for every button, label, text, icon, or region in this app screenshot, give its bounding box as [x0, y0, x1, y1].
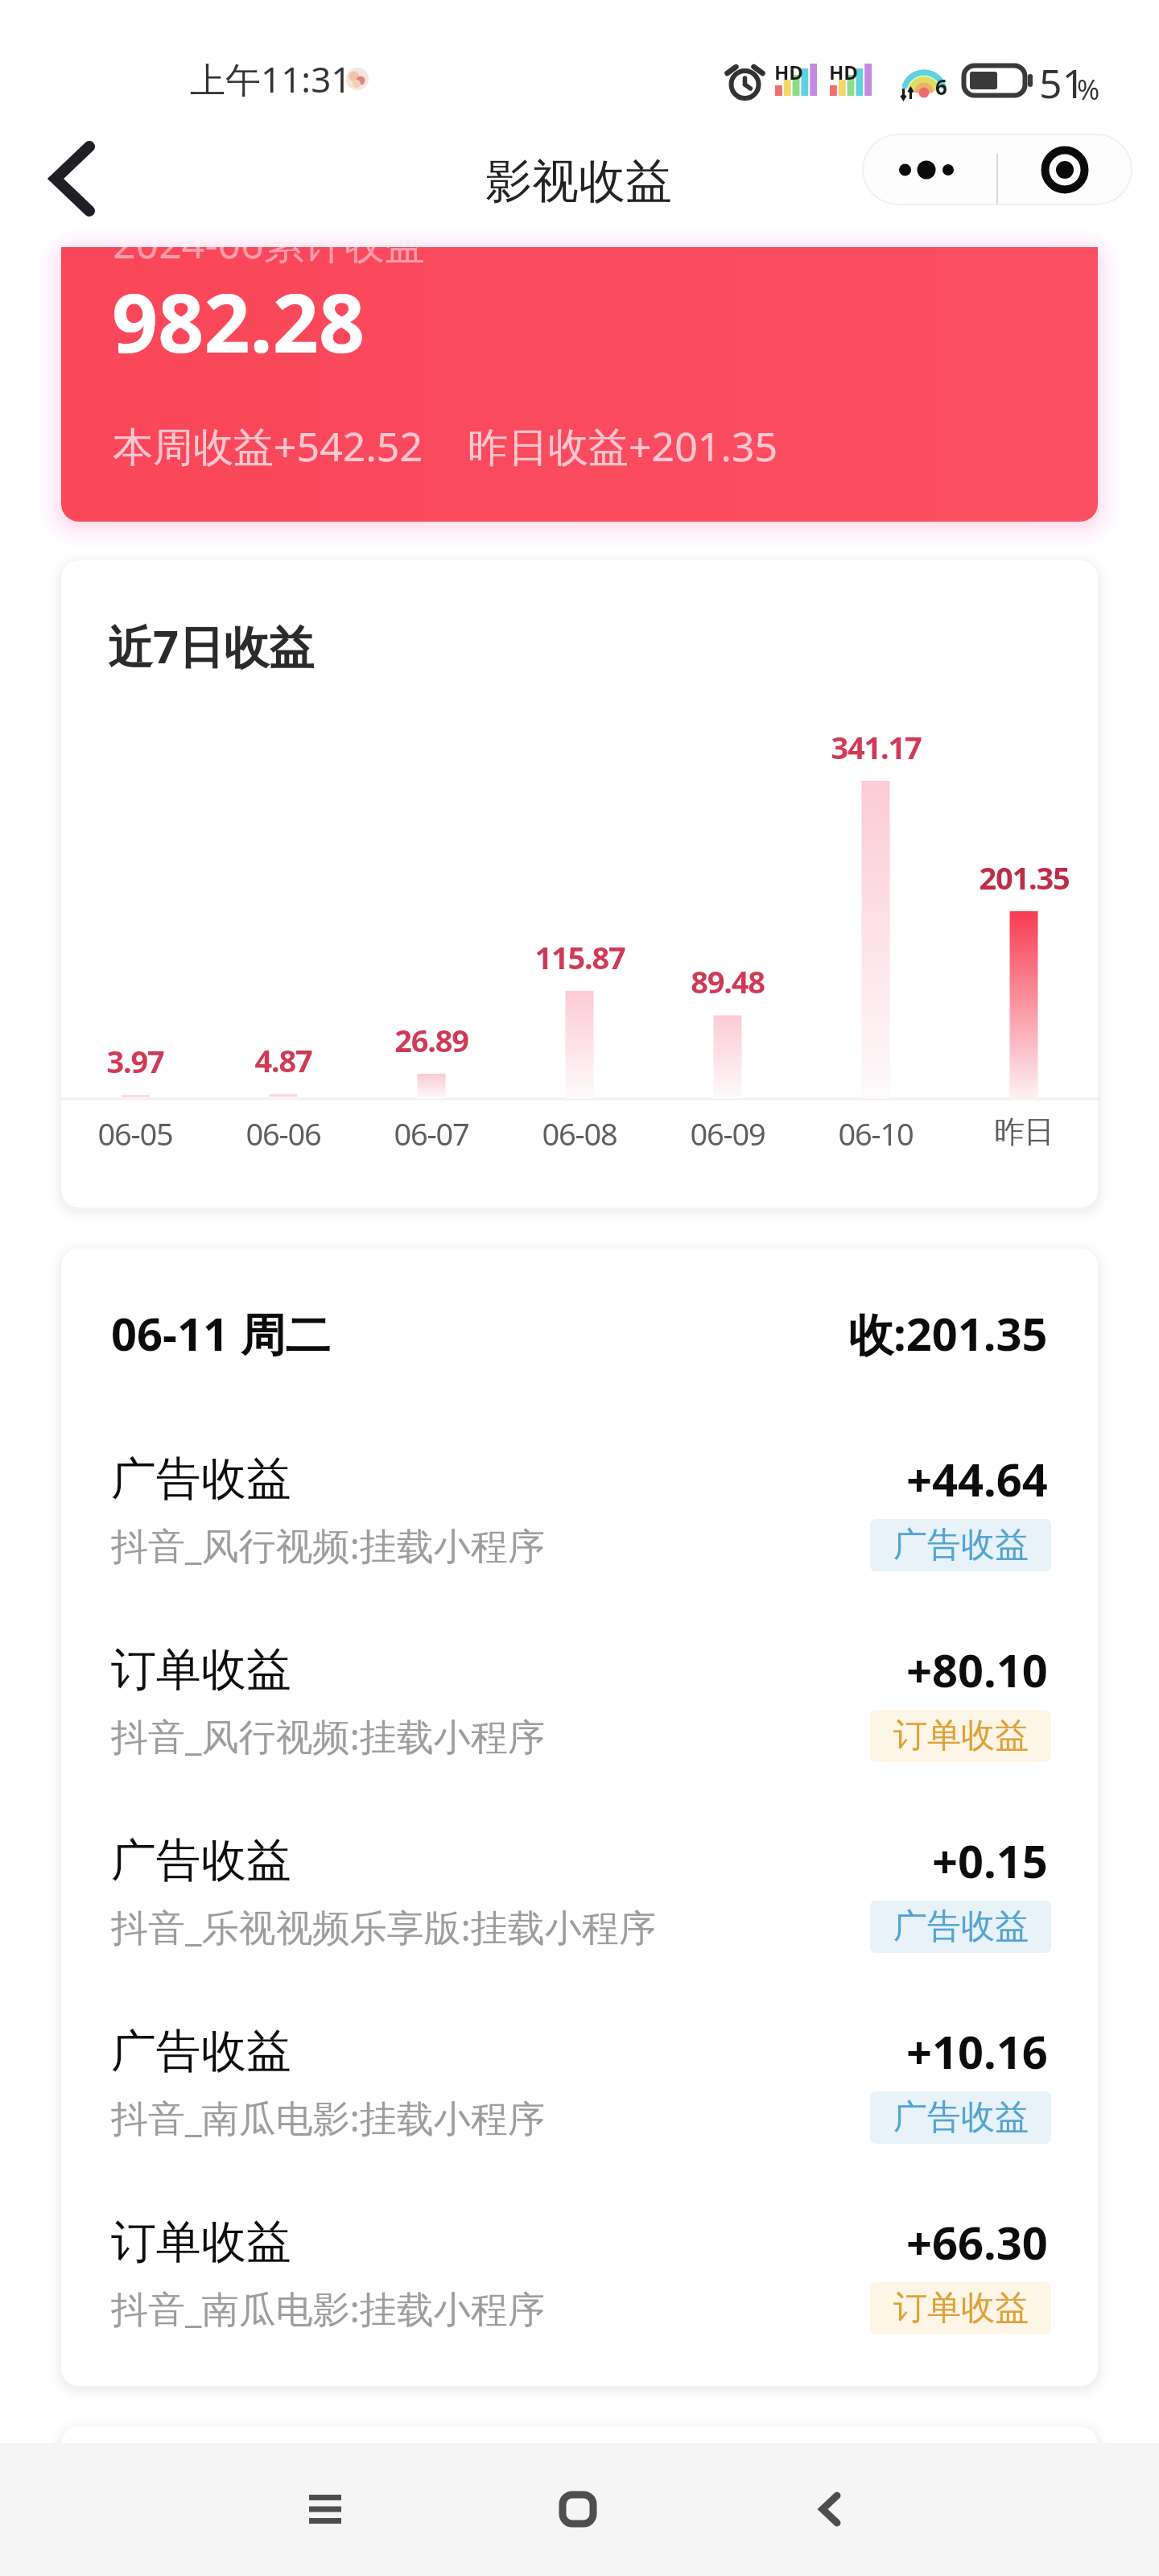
staticText: +80.10	[906, 1639, 1048, 1700]
staticText: 06-09	[690, 1113, 765, 1154]
button[interactable]: 近7日收益	[61, 560, 1098, 1207]
staticText: 影视收益	[485, 152, 672, 211]
button[interactable]: 广告收益	[61, 2021, 1098, 2193]
staticText: 抖音_乐视视频乐享版:挂载小程序	[111, 1901, 656, 1952]
staticText: 2024-06累计收益	[113, 247, 425, 270]
staticText: HD	[774, 59, 803, 85]
staticText: 广告收益	[893, 2096, 1029, 2139]
button[interactable]: 订单收益	[61, 2211, 1098, 2384]
staticText: 982.28	[112, 266, 365, 376]
staticText: 上午11:31	[190, 55, 352, 103]
staticText: 06-08	[542, 1113, 617, 1154]
staticText: 收:201.35	[848, 1302, 1048, 1364]
staticText: 近7日收益	[108, 615, 315, 676]
button[interactable]: 广告收益	[61, 1448, 1098, 1620]
staticText: 4.87	[254, 1039, 312, 1081]
staticText: 201.35	[979, 857, 1070, 898]
staticText: 06-10	[838, 1113, 914, 1154]
staticText: 抖音_风行视频:挂载小程序	[111, 1711, 545, 1761]
button[interactable]: Back	[21, 127, 124, 230]
button[interactable]: More options	[862, 134, 997, 205]
staticText: +0.15	[932, 1830, 1048, 1891]
staticText: 抖音_南瓜电影:挂载小程序	[111, 2092, 545, 2143]
staticText: +66.30	[906, 2211, 1048, 2273]
staticText: 341.17	[831, 726, 922, 768]
staticText: 06-07	[394, 1113, 469, 1154]
staticText: 订单收益	[111, 1641, 291, 1699]
staticText: 广告收益	[111, 2023, 291, 2080]
button[interactable]: Home	[542, 2474, 613, 2545]
staticText: 广告收益	[893, 1905, 1029, 1948]
staticText: 订单收益	[893, 2287, 1029, 2330]
staticText: 广告收益	[111, 1832, 291, 1889]
staticText: 06-05	[97, 1113, 173, 1154]
button[interactable]: 广告收益	[61, 1830, 1098, 2002]
staticText: 本周收益+542.52	[113, 419, 423, 473]
staticText: 06-06	[245, 1113, 321, 1154]
staticText: 广告收益	[111, 1451, 291, 1508]
button[interactable]: Close mini program	[997, 134, 1132, 205]
staticText: 115.87	[534, 936, 625, 978]
staticText: +10.16	[906, 2021, 1048, 2082]
button[interactable]: 订单收益	[61, 1639, 1098, 1811]
staticText: 广告收益	[893, 1524, 1029, 1567]
staticText: 6	[935, 72, 947, 101]
staticText: 89.48	[691, 960, 765, 1002]
button[interactable]: 2024-06累计收益	[61, 247, 1098, 522]
button[interactable]: Back	[794, 2474, 865, 2545]
staticText: %	[1077, 71, 1100, 108]
staticText: 订单收益	[893, 1715, 1029, 1757]
staticText: HD	[829, 59, 858, 85]
staticText: 昨日	[994, 1113, 1054, 1151]
staticText: 3.97	[106, 1040, 164, 1082]
staticText: 抖音_南瓜电影:挂载小程序	[111, 2283, 545, 2334]
staticText: 昨日收益+201.35	[468, 419, 777, 473]
staticText: 抖音_风行视频:挂载小程序	[111, 1520, 545, 1571]
staticText: +44.64	[906, 1448, 1048, 1509]
staticText: 06-11 周二	[111, 1302, 331, 1364]
staticText: 51	[1039, 56, 1086, 110]
other: Alarm set	[725, 61, 765, 100]
staticText: 订单收益	[111, 2214, 291, 2271]
staticText: 26.89	[394, 1019, 468, 1061]
button[interactable]: Recent apps	[290, 2474, 361, 2545]
